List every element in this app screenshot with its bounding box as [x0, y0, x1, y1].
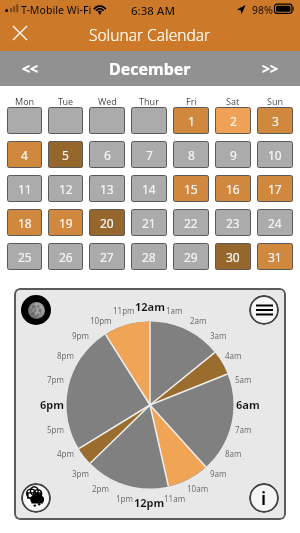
staticText: Thur: [139, 95, 159, 107]
button[interactable]: [89, 107, 125, 134]
staticText: 21: [142, 215, 156, 231]
staticText: 10pm: [90, 315, 112, 326]
staticText: 22: [184, 215, 198, 231]
staticText: 12am: [135, 299, 165, 314]
staticText: 4pm: [57, 448, 74, 459]
button[interactable]: 19: [48, 209, 83, 236]
staticText: 28: [142, 249, 156, 265]
button[interactable]: 2: [215, 107, 251, 134]
button[interactable]: 25: [7, 243, 42, 270]
button[interactable]: [7, 107, 42, 134]
button[interactable]: 4: [7, 141, 42, 168]
button[interactable]: 28: [131, 243, 167, 270]
button[interactable]: 14: [131, 175, 167, 202]
staticText: T-Mobile Wi-Fi: [21, 3, 92, 17]
staticText: Sat: [226, 95, 240, 107]
button[interactable]: Moon phase: [21, 295, 51, 325]
staticText: 5am: [235, 374, 252, 385]
staticText: 2pm: [92, 483, 109, 494]
button[interactable]: 29: [173, 243, 209, 270]
staticText: 11pm: [113, 305, 135, 316]
staticText: 7pm: [47, 374, 64, 385]
button[interactable]: 22: [173, 209, 209, 236]
button[interactable]: 7: [131, 141, 167, 168]
staticText: 3am: [210, 330, 227, 341]
button[interactable]: [48, 107, 83, 134]
button[interactable]: 21: [131, 209, 167, 236]
staticText: 17: [268, 181, 282, 197]
button[interactable]: 24: [257, 209, 293, 236]
button[interactable]: Close: [9, 22, 31, 44]
button[interactable]: 1: [173, 107, 209, 134]
button[interactable]: 9: [215, 141, 251, 168]
button[interactable]: 16: [215, 175, 251, 202]
staticText: 15: [184, 181, 198, 197]
staticText: Wed: [98, 95, 117, 107]
button[interactable]: 26: [48, 243, 83, 270]
staticText: 9pm: [72, 330, 89, 341]
staticText: i: [261, 487, 267, 510]
staticText: Fri: [186, 95, 197, 107]
staticText: 6: [104, 147, 111, 163]
staticText: 13: [100, 181, 114, 197]
staticText: 14: [142, 181, 156, 197]
button[interactable]: 18: [7, 209, 42, 236]
staticText: 7: [146, 147, 153, 163]
button[interactable]: Menu: [249, 295, 279, 325]
staticText: 6:38 AM: [131, 3, 175, 19]
staticText: 6am: [236, 397, 260, 412]
staticText: 16: [226, 181, 240, 197]
staticText: 23: [226, 215, 240, 231]
button[interactable]: 27: [89, 243, 125, 270]
button[interactable]: 3: [257, 107, 293, 134]
button[interactable]: 20: [89, 209, 125, 236]
button[interactable]: Weather: [21, 483, 51, 513]
button[interactable]: 6: [89, 141, 125, 168]
staticText: Sun: [267, 95, 284, 107]
staticText: 26: [59, 249, 73, 265]
button[interactable]: 13: [89, 175, 125, 202]
staticText: 8am: [225, 448, 242, 459]
staticText: 20: [100, 215, 114, 231]
button[interactable]: >>: [240, 51, 300, 86]
staticText: 1am: [166, 305, 183, 316]
staticText: Tue: [58, 95, 74, 107]
staticText: 12pm: [134, 495, 165, 510]
staticText: 2: [230, 113, 237, 129]
button[interactable]: [131, 107, 167, 134]
button[interactable]: <<: [0, 51, 60, 86]
staticText: 7am: [235, 424, 252, 435]
button[interactable]: 5: [48, 141, 83, 168]
button[interactable]: 12: [48, 175, 83, 202]
staticText: 6pm: [40, 397, 64, 412]
button[interactable]: Info: [249, 483, 279, 513]
button[interactable]: 8: [173, 141, 209, 168]
button[interactable]: 31: [257, 243, 293, 270]
staticText: 11am: [164, 493, 186, 504]
staticText: 11: [18, 181, 32, 197]
staticText: 1: [188, 113, 195, 129]
staticText: 4: [21, 147, 28, 163]
button[interactable]: 23: [215, 209, 251, 236]
staticText: 27: [100, 249, 114, 265]
button[interactable]: 15: [173, 175, 209, 202]
staticText: 9: [230, 147, 237, 163]
staticText: 2am: [190, 315, 207, 326]
staticText: Mon: [15, 95, 35, 107]
staticText: >>: [262, 59, 279, 78]
staticText: 10am: [187, 483, 209, 494]
staticText: 9am: [210, 468, 227, 479]
staticText: 4am: [225, 350, 242, 361]
button[interactable]: 30: [215, 243, 251, 270]
staticText: December: [109, 58, 191, 80]
button[interactable]: 10: [257, 141, 293, 168]
staticText: 3: [272, 113, 279, 129]
button[interactable]: 17: [257, 175, 293, 202]
staticText: 98%: [252, 3, 273, 17]
staticText: 1pm: [116, 493, 133, 504]
staticText: <<: [22, 59, 39, 78]
staticText: 18: [18, 215, 32, 231]
staticText: 25: [18, 249, 32, 265]
button[interactable]: 11: [7, 175, 42, 202]
staticText: 8: [188, 147, 195, 163]
